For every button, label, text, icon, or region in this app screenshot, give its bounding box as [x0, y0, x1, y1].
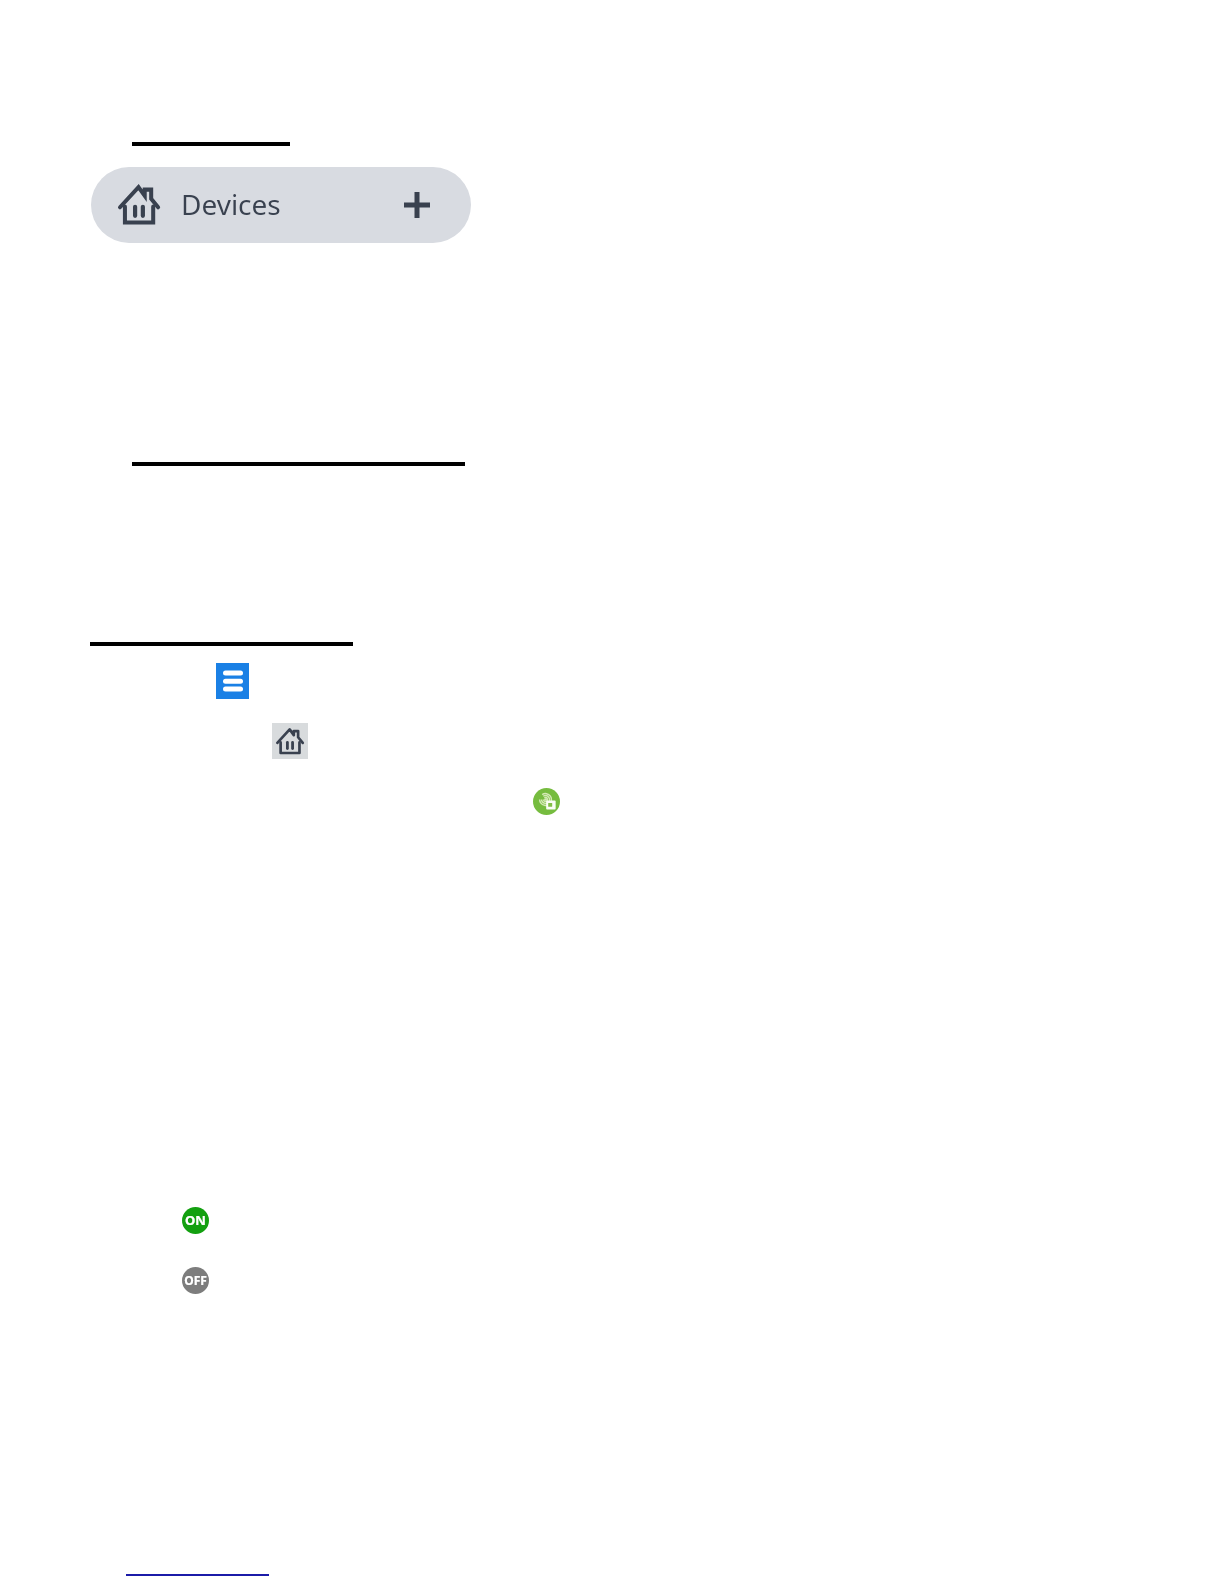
- staticText: ON: [185, 1211, 206, 1229]
- button[interactable]: Menu: [216, 663, 249, 699]
- button[interactable]: OFF: [182, 1267, 209, 1294]
- button[interactable]: ON: [182, 1207, 209, 1234]
- button[interactable]: Devices: [91, 167, 471, 243]
- staticText: Devices: [181, 185, 281, 223]
- staticText: OFF: [184, 1272, 207, 1288]
- button[interactable]: Add device: [392, 180, 442, 230]
- button[interactable]: Tap to pair: [533, 788, 560, 815]
- button[interactable]: Home: [272, 723, 308, 759]
